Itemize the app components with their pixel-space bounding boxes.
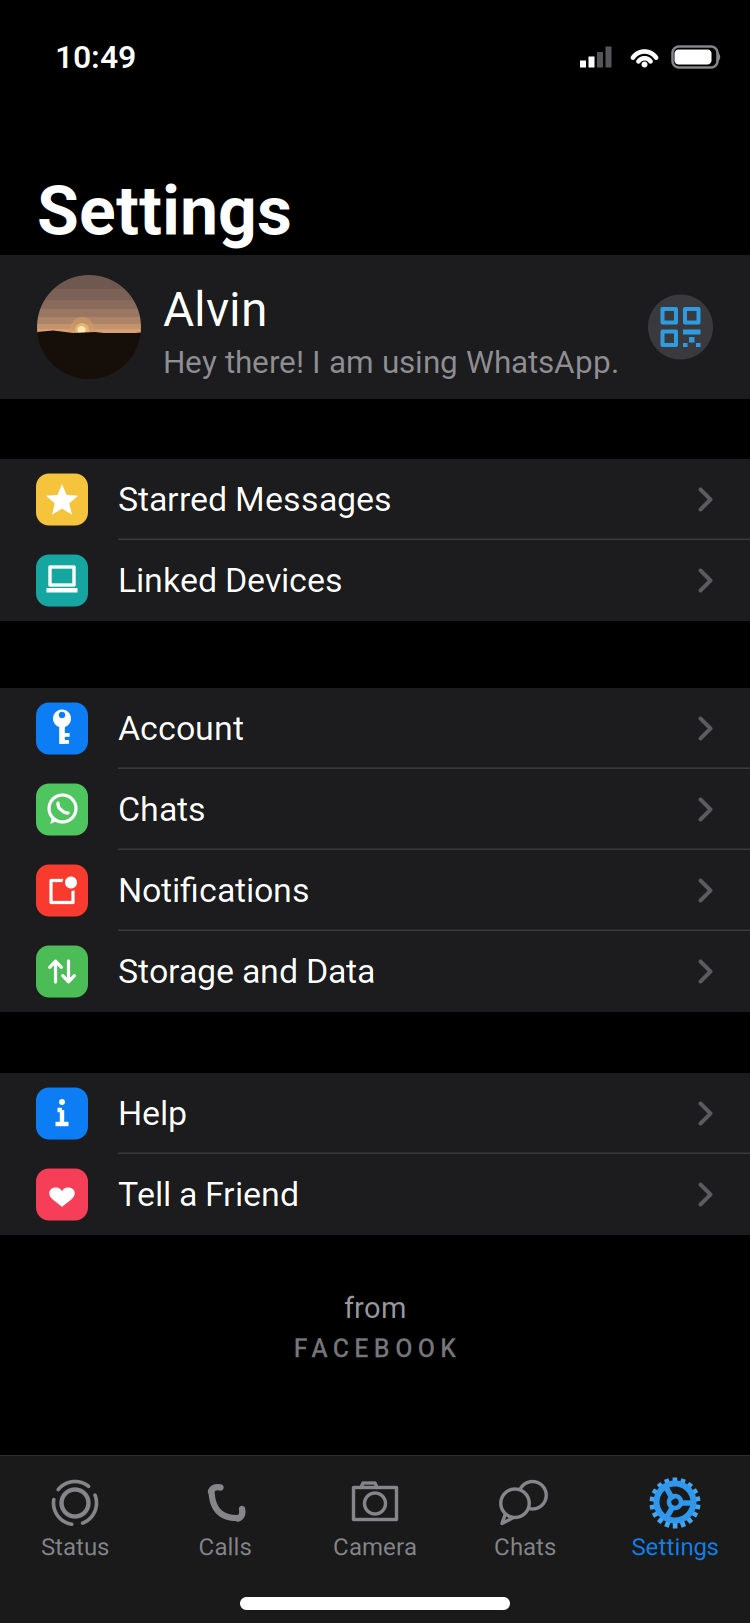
button[interactable]: Account <box>0 688 750 769</box>
button[interactable]: Status <box>0 1477 150 1561</box>
button[interactable]: QR code <box>648 294 713 359</box>
staticText: Status <box>41 1533 109 1561</box>
staticText: Notifications <box>118 871 310 910</box>
button[interactable]: Chats <box>0 769 750 850</box>
staticText: Chats <box>494 1533 556 1561</box>
button[interactable]: Alvin <box>0 255 750 399</box>
staticText: FACEBOOK <box>294 1334 456 1363</box>
button[interactable]: Chats <box>450 1477 600 1561</box>
staticText: Hey there! I am using WhatsApp. <box>163 344 619 381</box>
staticText: Account <box>118 709 244 748</box>
button[interactable]: Storage and Data <box>0 931 750 1012</box>
button[interactable]: Camera <box>300 1477 450 1561</box>
staticText: 10:49 <box>55 38 136 76</box>
staticText: Chats <box>118 790 206 829</box>
button[interactable]: Calls <box>150 1477 300 1561</box>
button[interactable]: Tell a Friend <box>0 1154 750 1235</box>
staticText: Help <box>118 1094 187 1133</box>
staticText: Calls <box>198 1533 251 1561</box>
staticText: Settings <box>631 1533 718 1561</box>
button[interactable]: Help <box>0 1073 750 1154</box>
staticText: Camera <box>333 1533 417 1561</box>
button[interactable]: Linked Devices <box>0 540 750 621</box>
button[interactable]: Notifications <box>0 850 750 931</box>
button[interactable]: Starred Messages <box>0 459 750 540</box>
staticText: Linked Devices <box>118 561 343 600</box>
staticText: Tell a Friend <box>118 1175 299 1214</box>
button[interactable]: Settings <box>600 1477 750 1561</box>
staticText: Storage and Data <box>118 952 375 991</box>
staticText: Alvin <box>163 281 268 338</box>
staticText: from <box>344 1291 406 1325</box>
staticText: Starred Messages <box>118 480 392 519</box>
staticText: Settings <box>37 171 292 251</box>
